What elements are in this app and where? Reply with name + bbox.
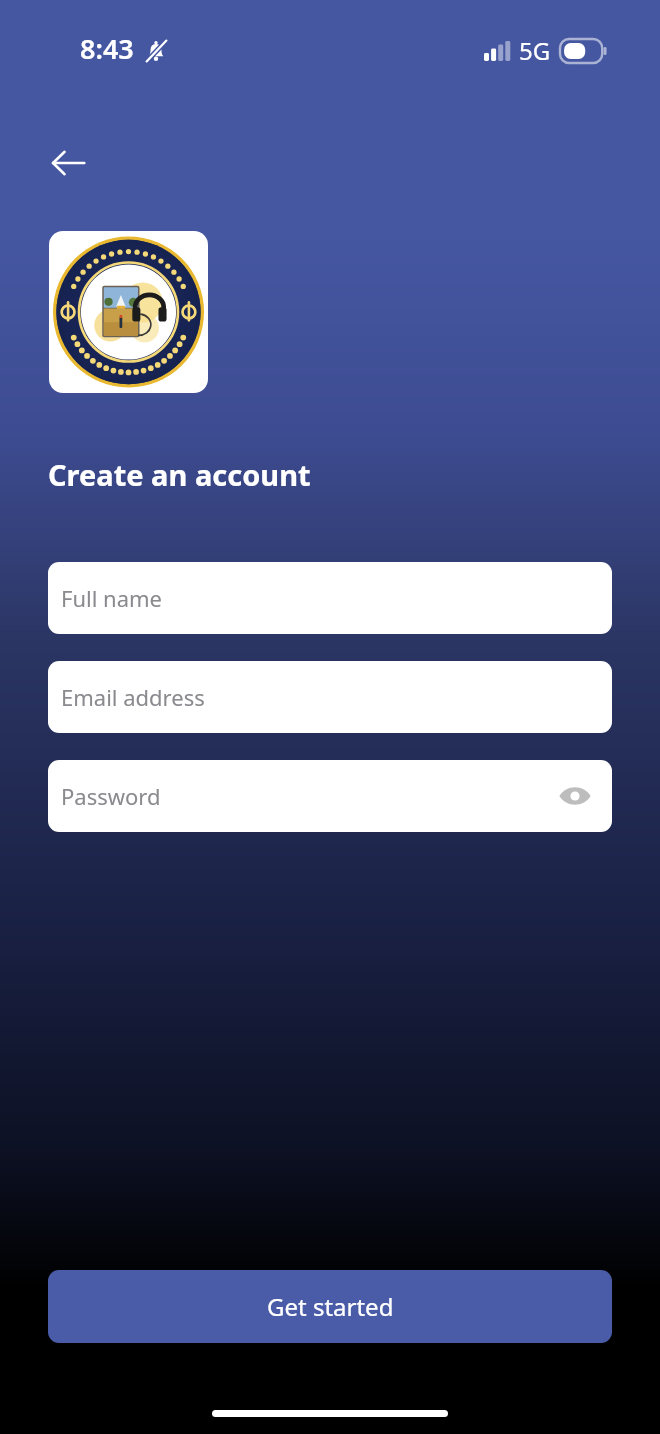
button[interactable]: Show password — [552, 773, 598, 819]
staticText: 8:43 — [80, 30, 134, 67]
staticText: Create an account — [48, 455, 311, 494]
staticText: Password — [61, 781, 161, 811]
button[interactable]: Email address — [48, 661, 612, 733]
button[interactable]: Full name — [48, 562, 612, 634]
staticText: Get started — [267, 1290, 394, 1323]
button[interactable]: Back — [40, 135, 96, 191]
button[interactable]: Password — [48, 760, 612, 832]
staticText: Full name — [61, 583, 163, 613]
staticText: Email address — [61, 682, 205, 712]
staticText: 5G — [519, 34, 551, 67]
button[interactable]: Sikh Audio World logo — [49, 231, 208, 393]
button[interactable]: Get started — [48, 1270, 612, 1343]
